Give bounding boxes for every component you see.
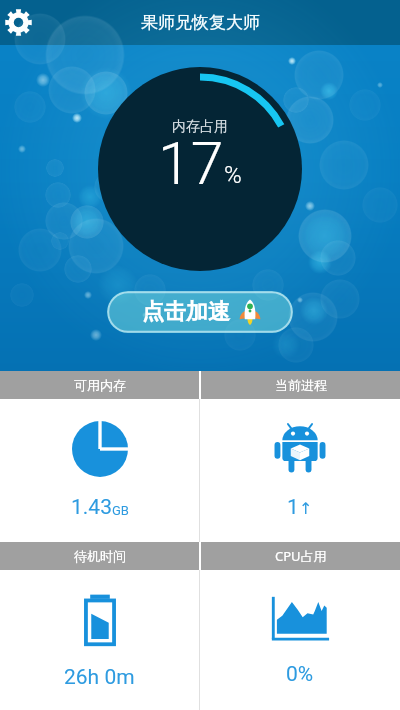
staticText: 当前进程: [275, 377, 327, 393]
button[interactable]: 点击加速: [107, 291, 293, 333]
button[interactable]: 0%: [200, 570, 400, 710]
staticText: 17: [158, 129, 224, 198]
staticText: 0%: [286, 662, 314, 687]
staticText: 点击加速: [142, 298, 230, 326]
staticText: 内存占用: [172, 118, 228, 136]
staticText: 1.43: [71, 495, 112, 520]
staticText: 果师兄恢复大师: [141, 12, 260, 33]
button[interactable]: Settings: [0, 0, 38, 45]
staticText: CPU占用: [275, 547, 327, 565]
staticText: 26h 0m: [64, 665, 135, 690]
staticText: 1: [287, 495, 299, 520]
staticText: 可用内存: [74, 377, 126, 393]
staticText: %: [224, 161, 242, 189]
staticText: 待机时间: [74, 548, 126, 564]
button[interactable]: 1: [200, 399, 400, 542]
staticText: GB: [112, 503, 129, 518]
button[interactable]: 1.43: [0, 399, 199, 542]
button[interactable]: 26h 0m: [0, 570, 199, 710]
staticText: ↑: [299, 499, 313, 518]
